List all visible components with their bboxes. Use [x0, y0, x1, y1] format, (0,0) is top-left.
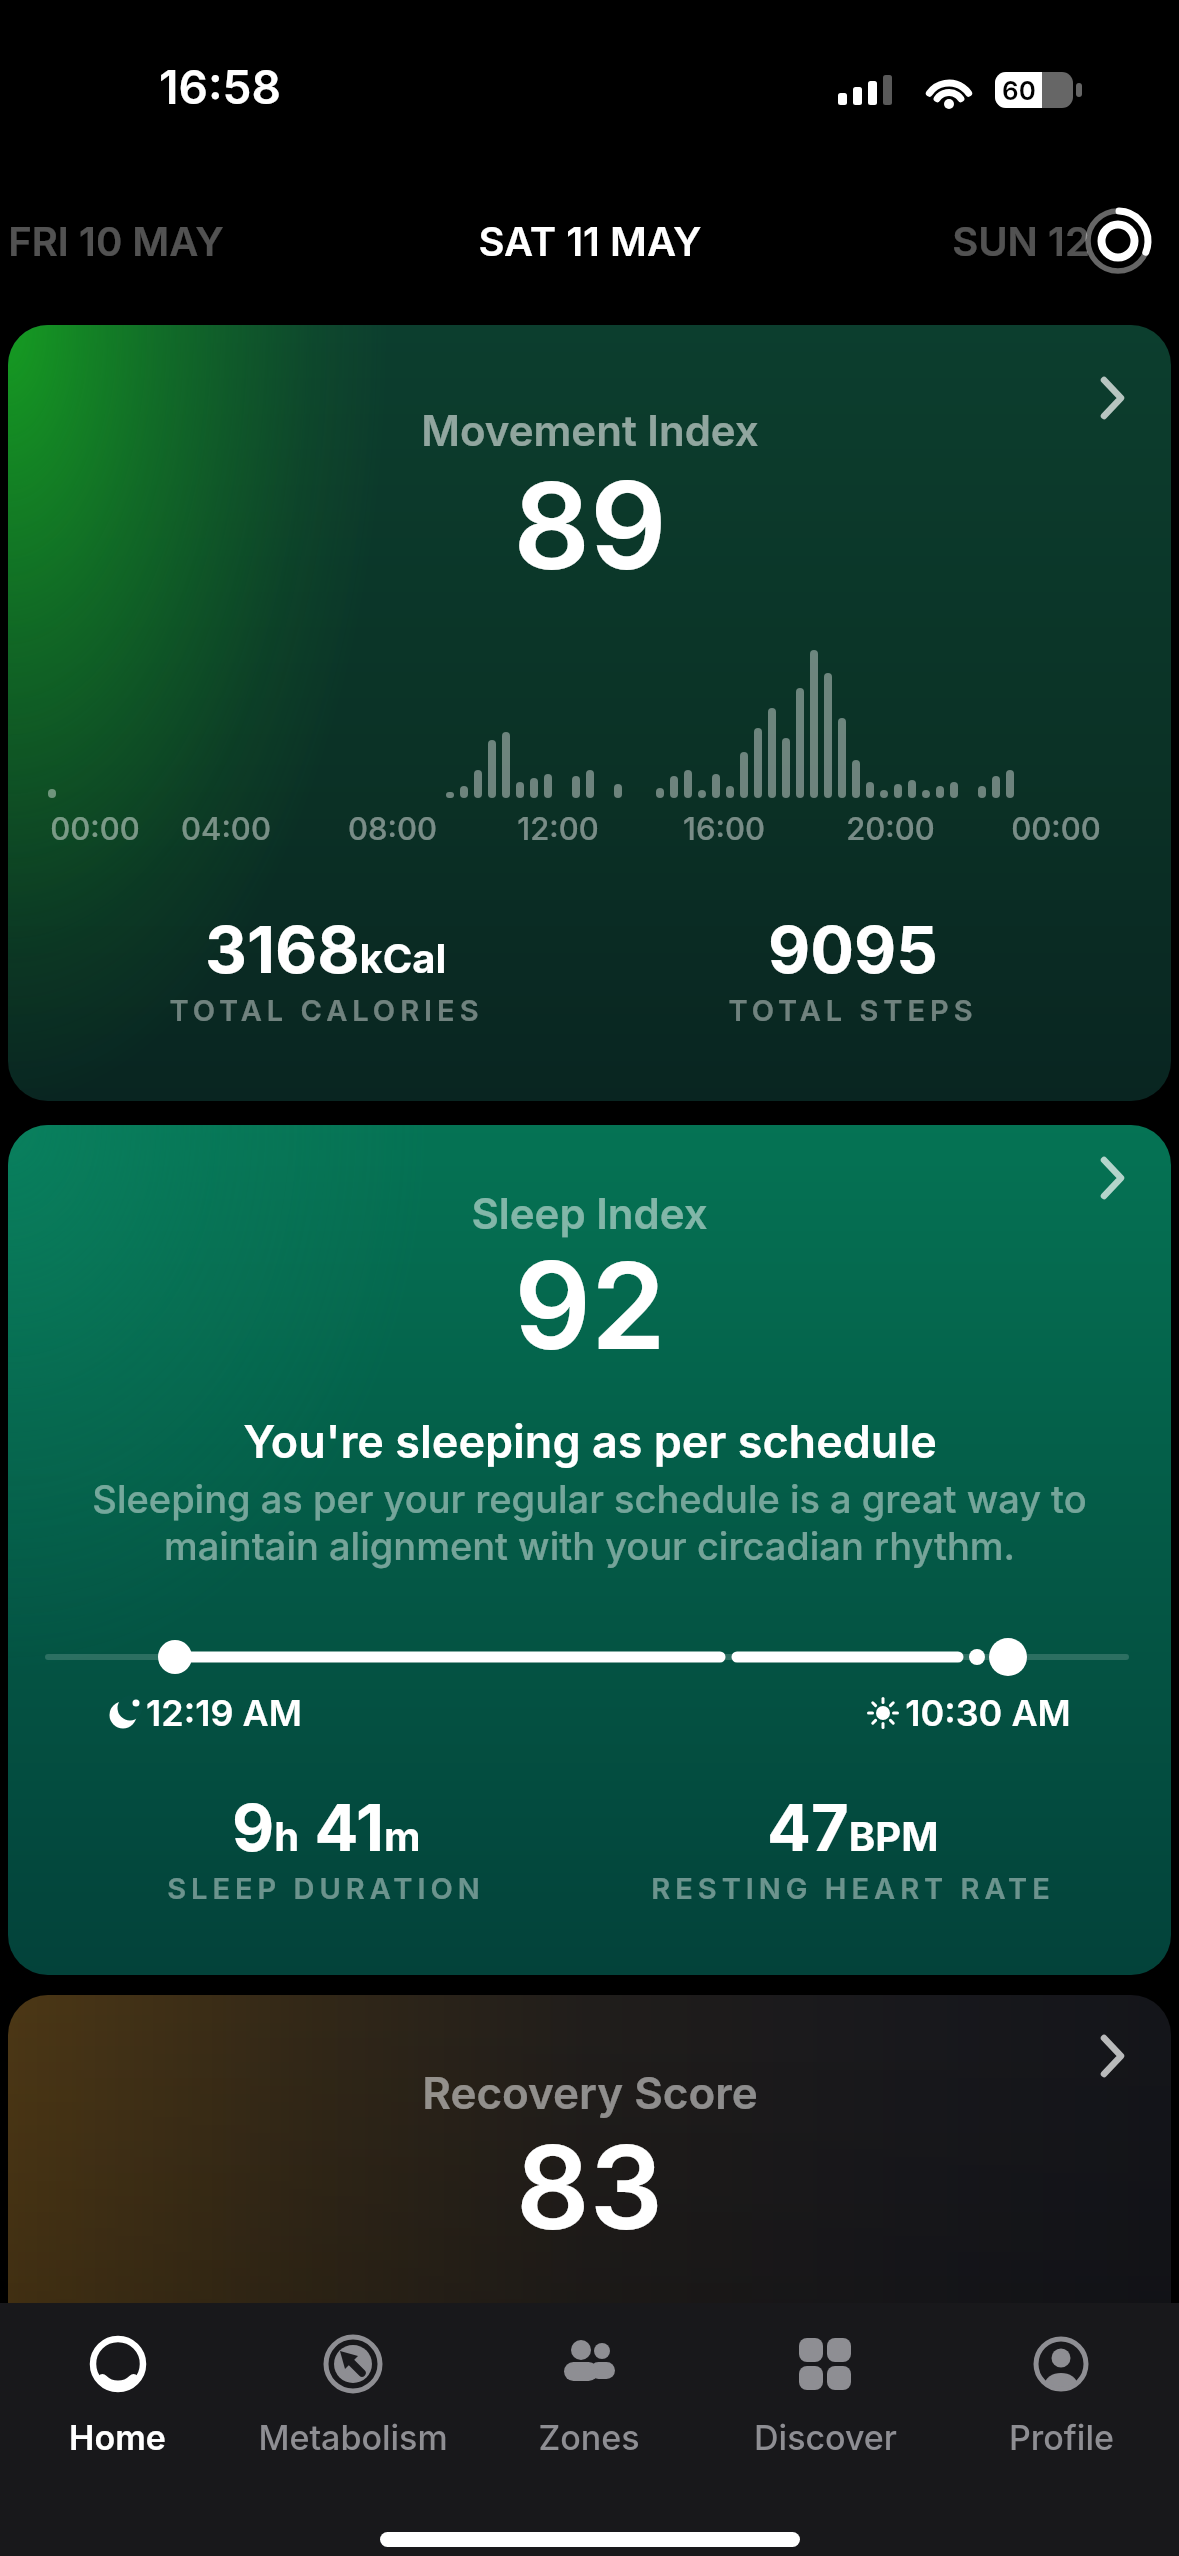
staticText: Sleep Index [471, 1188, 708, 1239]
staticText: Recovery Score [422, 2066, 758, 2119]
staticText: 83 [516, 2118, 663, 2257]
staticText: 89 [513, 453, 667, 598]
button[interactable]: Recovery Score [8, 1995, 1171, 2556]
button[interactable]: Sleep Index [8, 1125, 1171, 1975]
staticText: TOTAL STEPS [728, 993, 978, 1028]
staticText: 12:19 AM [146, 1691, 302, 1735]
staticText: 60 [1002, 75, 1036, 106]
button[interactable]: Discover [707, 2303, 943, 2458]
button[interactable]: Profile [943, 2303, 1179, 2458]
button[interactable]: Zones [471, 2303, 707, 2458]
button[interactable]: SUN 12 [952, 213, 1090, 269]
staticText: Discover [754, 2417, 897, 2458]
button[interactable]: FRI 10 MAY [8, 213, 224, 269]
staticText: 16:00 [683, 810, 765, 848]
staticText: 12:00 [517, 810, 599, 848]
staticText: SUN 12 [952, 217, 1090, 265]
button[interactable] [1085, 208, 1151, 274]
staticText: Movement Index [421, 405, 759, 456]
staticText: 9h 41m [232, 1788, 421, 1867]
staticText: FRI 10 MAY [8, 217, 224, 265]
button[interactable]: Movement Index [8, 325, 1171, 1101]
staticText: 00:00 [50, 810, 140, 848]
staticText: Zones [538, 2417, 640, 2458]
staticText: SAT 11 MAY [478, 217, 702, 265]
button[interactable]: Home [0, 2303, 235, 2458]
staticText: RESTING HEART RATE [651, 1871, 1055, 1906]
staticText: Profile [1009, 2417, 1114, 2458]
staticText: 47BPM [767, 1788, 939, 1867]
staticText: 20:00 [846, 810, 935, 848]
staticText: 16:58 [159, 59, 281, 115]
staticText: Home [69, 2417, 166, 2458]
staticText: 9095 [768, 910, 938, 989]
staticText: Sleeping as per your regular schedule is… [92, 1476, 1087, 1569]
staticText: 92 [514, 1233, 666, 1378]
staticText: Metabolism [258, 2417, 448, 2458]
button[interactable]: Metabolism [235, 2303, 471, 2458]
staticText: 00:00 [1011, 810, 1101, 848]
staticText: You're sleeping as per schedule [243, 1414, 937, 1468]
staticText: 08:00 [348, 810, 437, 848]
staticText: SLEEP DURATION [167, 1871, 485, 1906]
staticText: 10:30 AM [905, 1691, 1071, 1735]
staticText: 3168kCal [205, 910, 447, 989]
staticText: 04:00 [181, 810, 271, 848]
staticText: TOTAL CALORIES [169, 993, 484, 1028]
